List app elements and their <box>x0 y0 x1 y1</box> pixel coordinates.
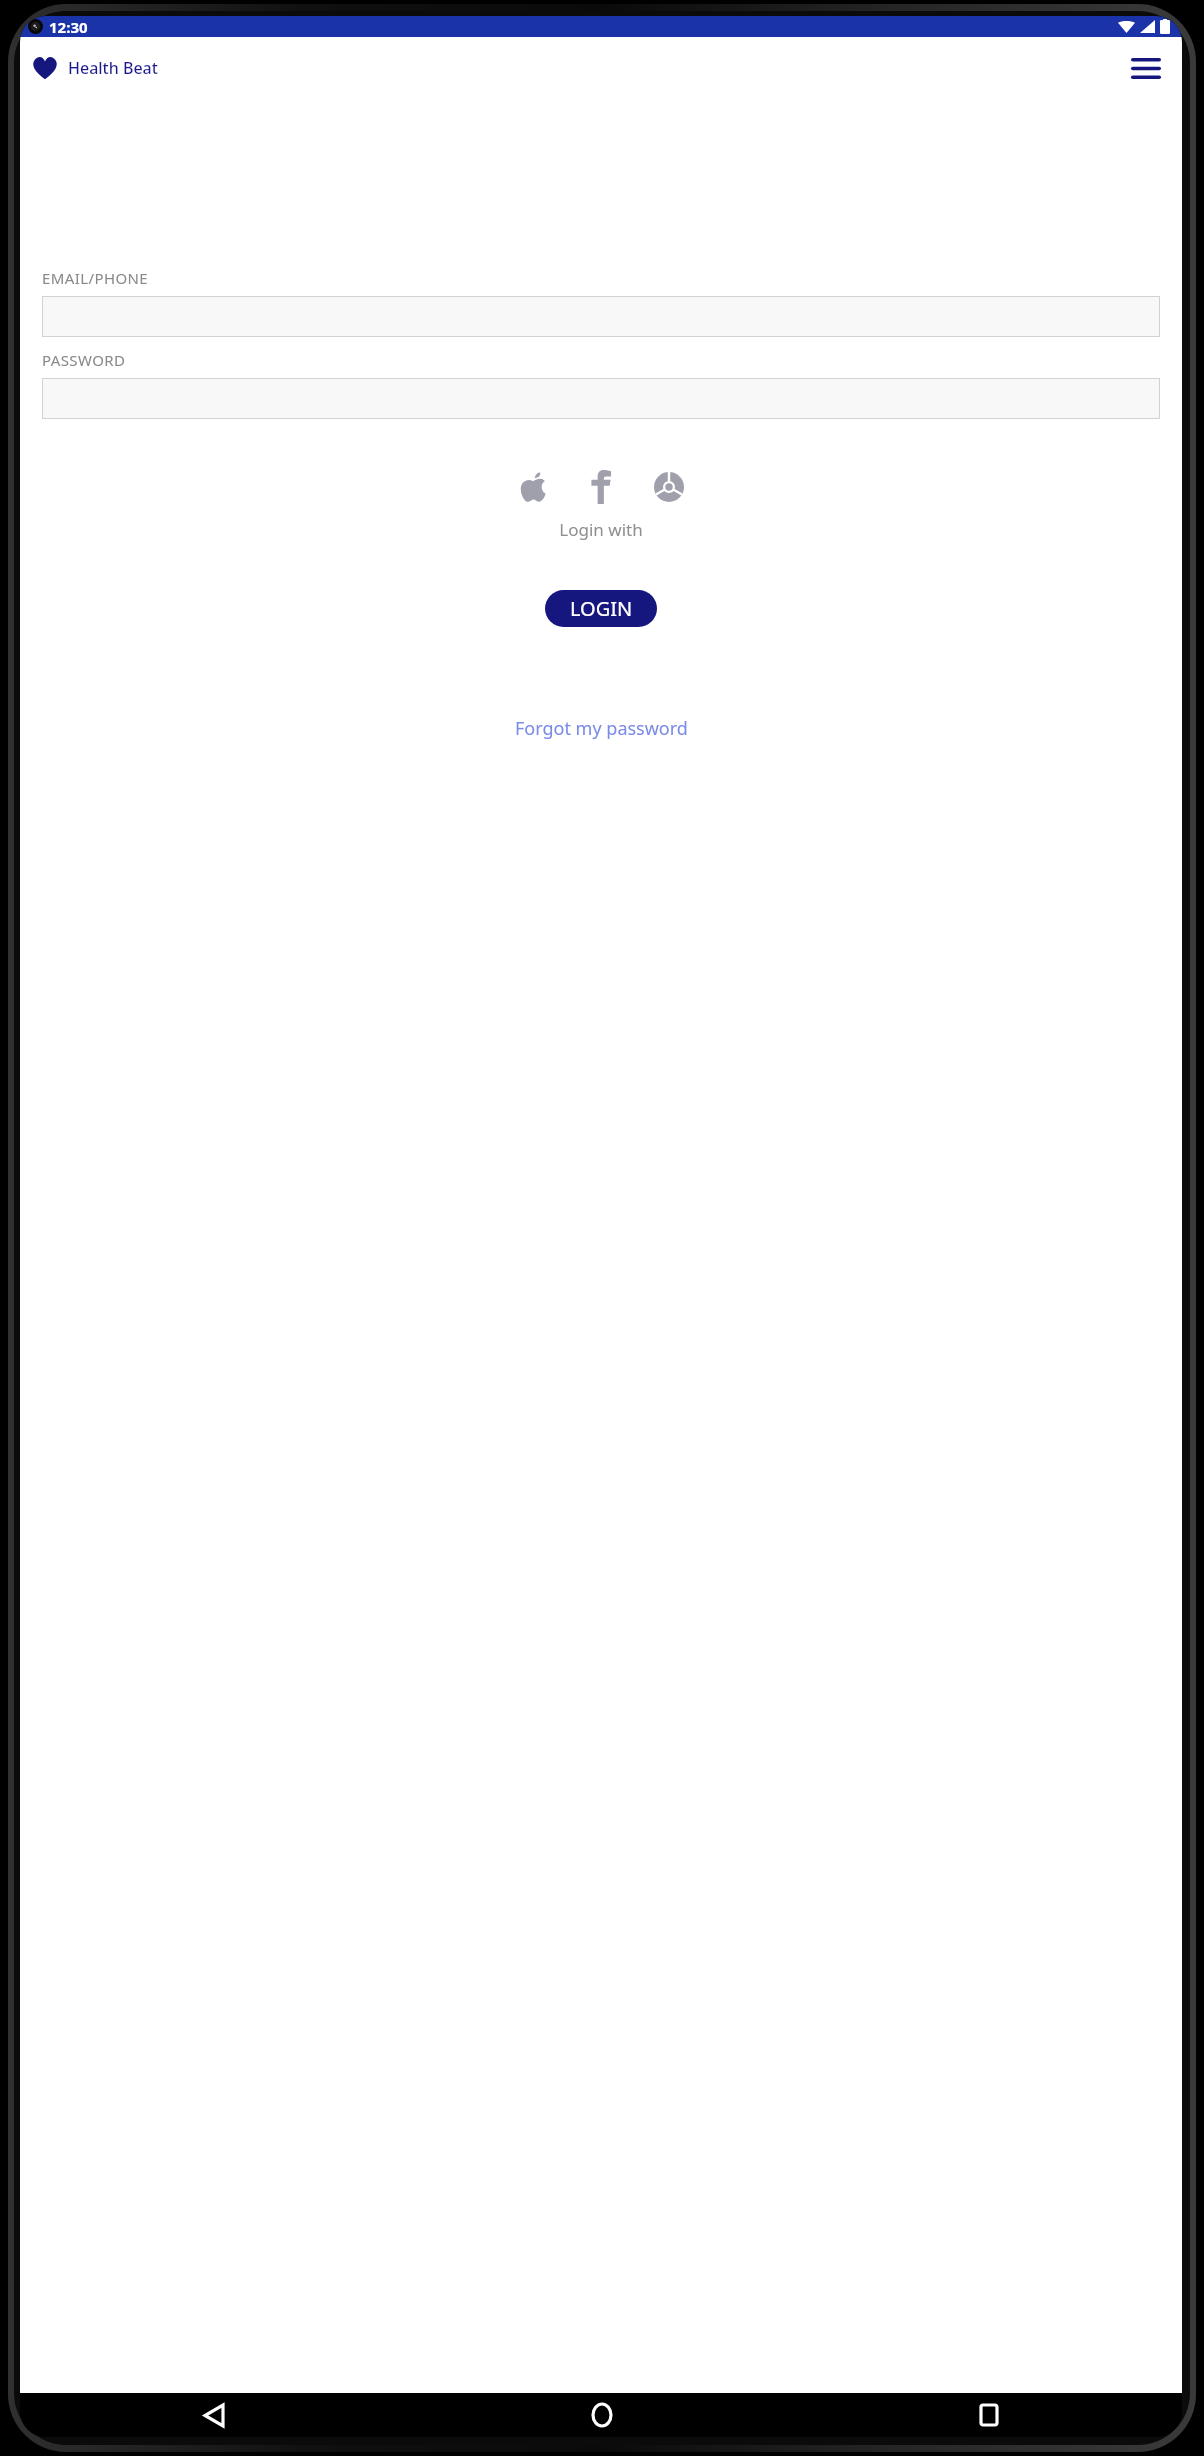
button[interactable]: Menu <box>1124 46 1168 90</box>
staticText: LOGIN <box>570 595 633 622</box>
button[interactable]: Sign in with Facebook <box>579 465 623 509</box>
button[interactable]: LOGIN <box>545 590 657 627</box>
button[interactable]: Home <box>408 2393 795 2437</box>
staticText: Health Beat <box>68 57 158 79</box>
button[interactable]: Forgot my password <box>509 710 694 747</box>
button[interactable]: Back <box>20 2393 408 2437</box>
staticText: Forgot my password <box>515 716 688 741</box>
button[interactable]: Recents <box>795 2393 1182 2437</box>
staticText: Login with <box>42 518 1160 541</box>
staticText: EMAIL/PHONE <box>42 268 149 288</box>
button[interactable] <box>42 296 1160 337</box>
staticText: 12:30 <box>49 17 88 37</box>
button[interactable]: Health Beat <box>32 56 158 80</box>
button[interactable] <box>42 378 1160 419</box>
button[interactable]: Sign in with Apple <box>511 465 555 509</box>
staticText: PASSWORD <box>42 350 126 370</box>
button[interactable]: Sign in with Google Chrome <box>647 465 691 509</box>
